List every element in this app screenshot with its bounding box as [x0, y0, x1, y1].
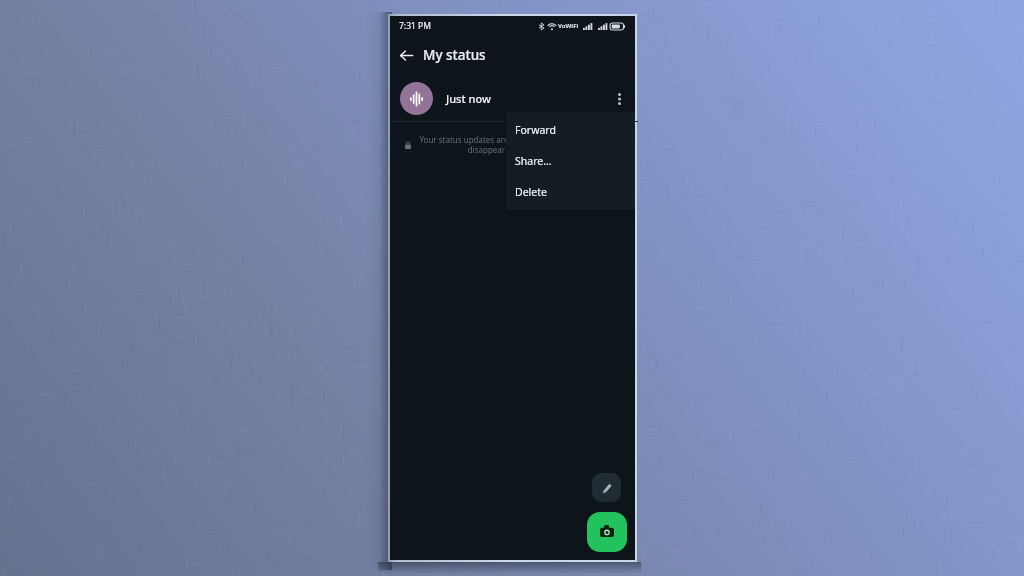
staticText: Delete	[515, 185, 547, 199]
staticText: 7:31 PM	[399, 20, 431, 32]
staticText: Your status updates are end-to-end encry…	[415, 134, 613, 156]
staticText: My status	[423, 46, 486, 64]
button[interactable]: Back	[395, 44, 417, 66]
staticText: VoWiFi	[558, 22, 579, 30]
button[interactable]: Delete	[506, 176, 635, 207]
staticText: Share...	[515, 154, 552, 168]
staticText: Just now	[446, 91, 491, 106]
button[interactable]: Just now	[390, 76, 635, 120]
button[interactable]: More options	[608, 87, 630, 109]
staticText: Forward	[515, 123, 556, 137]
button[interactable]: Forward	[506, 114, 635, 145]
button[interactable]: Write status	[592, 473, 621, 502]
button[interactable]: Share...	[506, 145, 635, 176]
button[interactable]: Camera	[587, 512, 627, 552]
